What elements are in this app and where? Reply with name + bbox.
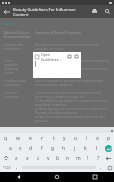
button[interactable]: o [92,133,103,143]
staticText: i [86,135,88,142]
button[interactable]: t [48,133,59,143]
button[interactable]: h [58,143,69,153]
staticText: h [62,145,66,152]
staticText: Summary of Desired Functions [35,31,110,35]
staticText: q [4,135,8,142]
staticText: z [15,155,18,162]
button[interactable]: r [36,133,48,143]
button[interactable]: c [33,153,43,163]
staticText: r [41,135,44,142]
button[interactable]: Copy [67,54,72,59]
staticText: e [29,135,32,142]
button[interactable]: ? [93,153,103,163]
staticText: Disinfect all hard to surfaces such as b… [35,43,110,55]
button[interactable]: s [15,143,25,153]
button[interactable]: y [59,133,70,143]
staticText: , [16,164,18,171]
staticText: p [107,135,111,142]
staticText: y [63,135,66,142]
button[interactable]: g [47,143,58,153]
staticText: o [96,135,100,142]
staticText: k [84,145,87,152]
button[interactable]: ! [83,153,93,163]
staticText: Open Guidelines ... [41,52,67,61]
button[interactable]: n [63,153,73,163]
button[interactable]: p [103,133,114,143]
button[interactable]: l [91,143,102,153]
button[interactable]: Back [0,5,13,18]
staticText: Beauty Guidelines For Influencer Content [13,7,88,17]
staticText: b [56,155,60,162]
button[interactable]: e [24,133,36,143]
staticText: s [19,145,22,152]
staticText: c [37,155,40,162]
staticText: Hand washes, clean hands and area when s… [35,59,110,75]
staticText: v [47,155,50,162]
button[interactable]: x [22,153,33,163]
button[interactable]: Search [101,5,114,18]
button[interactable]: Expand suggestions [109,128,114,133]
button[interactable]: Backspace [103,153,114,163]
button[interactable]: Home [38,172,76,182]
button[interactable]: Print [88,5,101,18]
staticText: ? [97,155,100,162]
button[interactable]: m [73,153,83,163]
staticText: ?123 [3,165,11,170]
staticText: Table [4,21,15,26]
button[interactable]: q [0,133,12,143]
staticText: Material Control Recommendation [4,31,32,39]
staticText: Containers for the formation of products… [35,91,110,123]
staticText: ! [87,155,89,162]
staticText: Limit the amount of storage and supply m… [35,79,110,87]
button[interactable]: ?123 [0,163,13,172]
button[interactable]: v [43,153,53,163]
button[interactable]: Back [0,172,38,182]
button[interactable]: Enter [102,143,114,153]
staticText: w [16,135,20,142]
staticText: u [74,135,78,142]
button[interactable]: z [11,153,22,163]
button[interactable]: More options [74,54,79,59]
button[interactable]: Recents [76,172,114,182]
button[interactable]: , [13,163,21,172]
staticText: n [66,155,70,162]
staticText: . [100,164,102,171]
button[interactable]: w [12,133,24,143]
staticText: m [76,155,81,162]
staticText: d [29,145,33,152]
button[interactable]: u [70,133,81,143]
staticText: t [53,135,55,142]
button[interactable]: . [97,163,105,172]
button[interactable]: b [53,153,63,163]
button[interactable]: f [36,143,47,153]
staticText: Drug formulate separations [4,79,32,87]
button[interactable]: i [81,133,92,143]
staticText: Cleaning and disinfection [4,43,32,51]
button[interactable]: d [25,143,36,153]
staticText: Tissue properties collecting control [4,59,32,75]
staticText: a [9,145,12,152]
button[interactable]: a [5,143,15,153]
staticText: x [26,155,29,162]
button[interactable]: Emoji [105,163,114,172]
staticText: Container structures [4,91,32,99]
button[interactable]: j [69,143,80,153]
staticText: j [74,145,76,152]
staticText: f [41,145,43,152]
button[interactable]: k [80,143,91,153]
staticText: g [51,145,55,152]
button[interactable]: Shift [0,153,11,163]
staticText: l [96,145,98,152]
